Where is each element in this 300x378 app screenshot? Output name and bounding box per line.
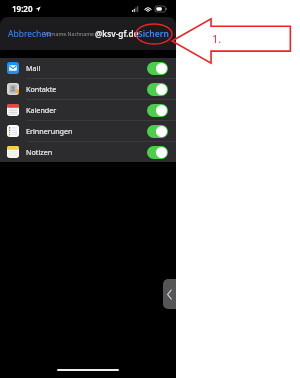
button[interactable]: Zurück — [163, 279, 176, 309]
staticText: 1. — [212, 31, 222, 46]
staticText: Mail — [26, 63, 41, 73]
staticText: 19:20 — [12, 3, 33, 14]
staticText: Sichern — [138, 28, 169, 40]
button[interactable]: Erinnerungen — [0, 121, 176, 142]
staticText: Kalender — [26, 105, 57, 115]
staticText: Notizen — [26, 147, 53, 157]
staticText: @ksv-gf.de — [95, 28, 139, 39]
button[interactable]: Ein — [147, 104, 168, 117]
button[interactable]: Notizen — [0, 142, 176, 162]
staticText: Abbrechen — [8, 28, 52, 40]
staticText: Kontakte — [26, 84, 57, 94]
button[interactable]: Ein — [147, 125, 168, 138]
button[interactable]: Kontakte — [0, 79, 176, 100]
button[interactable]: Sichern — [135, 24, 172, 44]
button[interactable]: Mail — [0, 58, 176, 79]
staticText: Vorname.Nachname — [44, 30, 95, 37]
button[interactable]: Kalender — [0, 100, 176, 121]
button[interactable]: Ein — [147, 62, 168, 75]
button[interactable]: Ein — [147, 146, 168, 159]
staticText: Erinnerungen — [26, 126, 73, 136]
button[interactable]: Abbrechen — [6, 24, 54, 44]
button[interactable]: Ein — [147, 83, 168, 96]
